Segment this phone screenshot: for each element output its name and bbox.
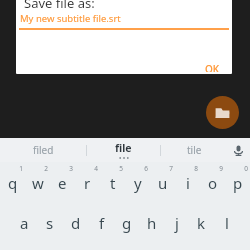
- button[interactable]: a: [11, 206, 37, 250]
- button[interactable]: g: [114, 206, 139, 250]
- button[interactable]: 6: [125, 162, 150, 206]
- staticText: OK: [205, 62, 220, 72]
- staticText: 6: [144, 164, 148, 173]
- button[interactable]: 8: [175, 162, 200, 206]
- button[interactable]: 9: [200, 162, 225, 206]
- staticText: g: [122, 213, 132, 233]
- button[interactable]: 5: [100, 162, 125, 206]
- staticText: l: [225, 213, 229, 233]
- button[interactable]: 7: [150, 162, 175, 206]
- button[interactable]: Open folder: [206, 96, 239, 129]
- button[interactable]: h: [139, 206, 164, 250]
- button[interactable]: 0: [225, 162, 250, 206]
- staticText: f: [99, 213, 105, 233]
- staticText: 3: [69, 164, 73, 173]
- staticText: s: [46, 213, 54, 233]
- staticText: filed: [33, 143, 54, 157]
- staticText: r: [84, 173, 91, 193]
- staticText: file: [115, 141, 132, 155]
- button[interactable]: Voice input: [227, 138, 250, 162]
- staticText: e: [58, 173, 67, 193]
- staticText: 1: [19, 164, 23, 173]
- staticText: 5: [119, 164, 123, 173]
- staticText: 7: [169, 164, 173, 173]
- staticText: t: [110, 173, 116, 193]
- button[interactable]: f: [89, 206, 114, 250]
- staticText: d: [71, 213, 81, 233]
- staticText: y: [134, 173, 142, 193]
- staticText: Save file as:: [24, 0, 95, 12]
- button[interactable]: j: [164, 206, 189, 250]
- staticText: 0: [244, 164, 248, 173]
- staticText: 2: [44, 164, 48, 173]
- staticText: 8: [194, 164, 198, 173]
- staticText: p: [233, 173, 243, 193]
- staticText: u: [158, 173, 168, 193]
- staticText: 4: [94, 164, 98, 173]
- staticText: 9: [219, 164, 223, 173]
- staticText: a: [20, 213, 29, 233]
- button[interactable]: 1: [0, 162, 25, 206]
- staticText: k: [197, 213, 206, 233]
- staticText: j: [175, 213, 179, 233]
- staticText: tile: [187, 143, 202, 157]
- button[interactable]: l: [214, 206, 239, 250]
- button[interactable]: tile: [161, 138, 227, 162]
- staticText: h: [147, 213, 157, 233]
- button[interactable]: s: [37, 206, 63, 250]
- staticText: q: [8, 173, 18, 193]
- button[interactable]: file: [87, 138, 160, 162]
- button[interactable]: 2: [25, 162, 50, 206]
- button[interactable]: 3: [50, 162, 75, 206]
- staticText: o: [208, 173, 218, 193]
- staticText: My new subtitle file.srt: [20, 12, 121, 25]
- staticText: i: [186, 173, 190, 193]
- button[interactable]: k: [189, 206, 214, 250]
- button[interactable]: OK: [193, 60, 232, 74]
- button[interactable]: d: [63, 206, 89, 250]
- button[interactable]: 4: [75, 162, 100, 206]
- button[interactable]: filed: [0, 138, 86, 162]
- staticText: w: [32, 173, 44, 193]
